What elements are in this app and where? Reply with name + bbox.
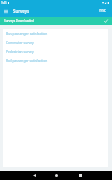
staticText: Bus passenger satisfaction [6, 31, 48, 35]
staticText: 9:45 [1, 1, 7, 5]
staticText: Surveys Downloaded [4, 19, 34, 23]
staticText: Commuter survey [6, 40, 34, 44]
button[interactable]: Bus passenger satisfaction [3, 28, 108, 37]
button[interactable]: Home [50, 171, 62, 180]
button[interactable]: Done [102, 17, 110, 25]
button[interactable]: Menu [0, 5, 12, 17]
staticText: SYNC [99, 9, 107, 13]
button[interactable]: Recents [74, 171, 86, 180]
button[interactable]: SYNC [96, 9, 112, 13]
button[interactable]: Commuter survey [3, 37, 108, 46]
staticText: Pedestrian survey [6, 49, 34, 53]
button[interactable]: Back [28, 171, 40, 180]
button[interactable]: Rail passenger satisfaction [3, 55, 108, 64]
staticText: Surveys [13, 8, 30, 14]
button[interactable]: Pedestrian survey [3, 46, 108, 55]
staticText: Rail passenger satisfaction [6, 58, 48, 62]
